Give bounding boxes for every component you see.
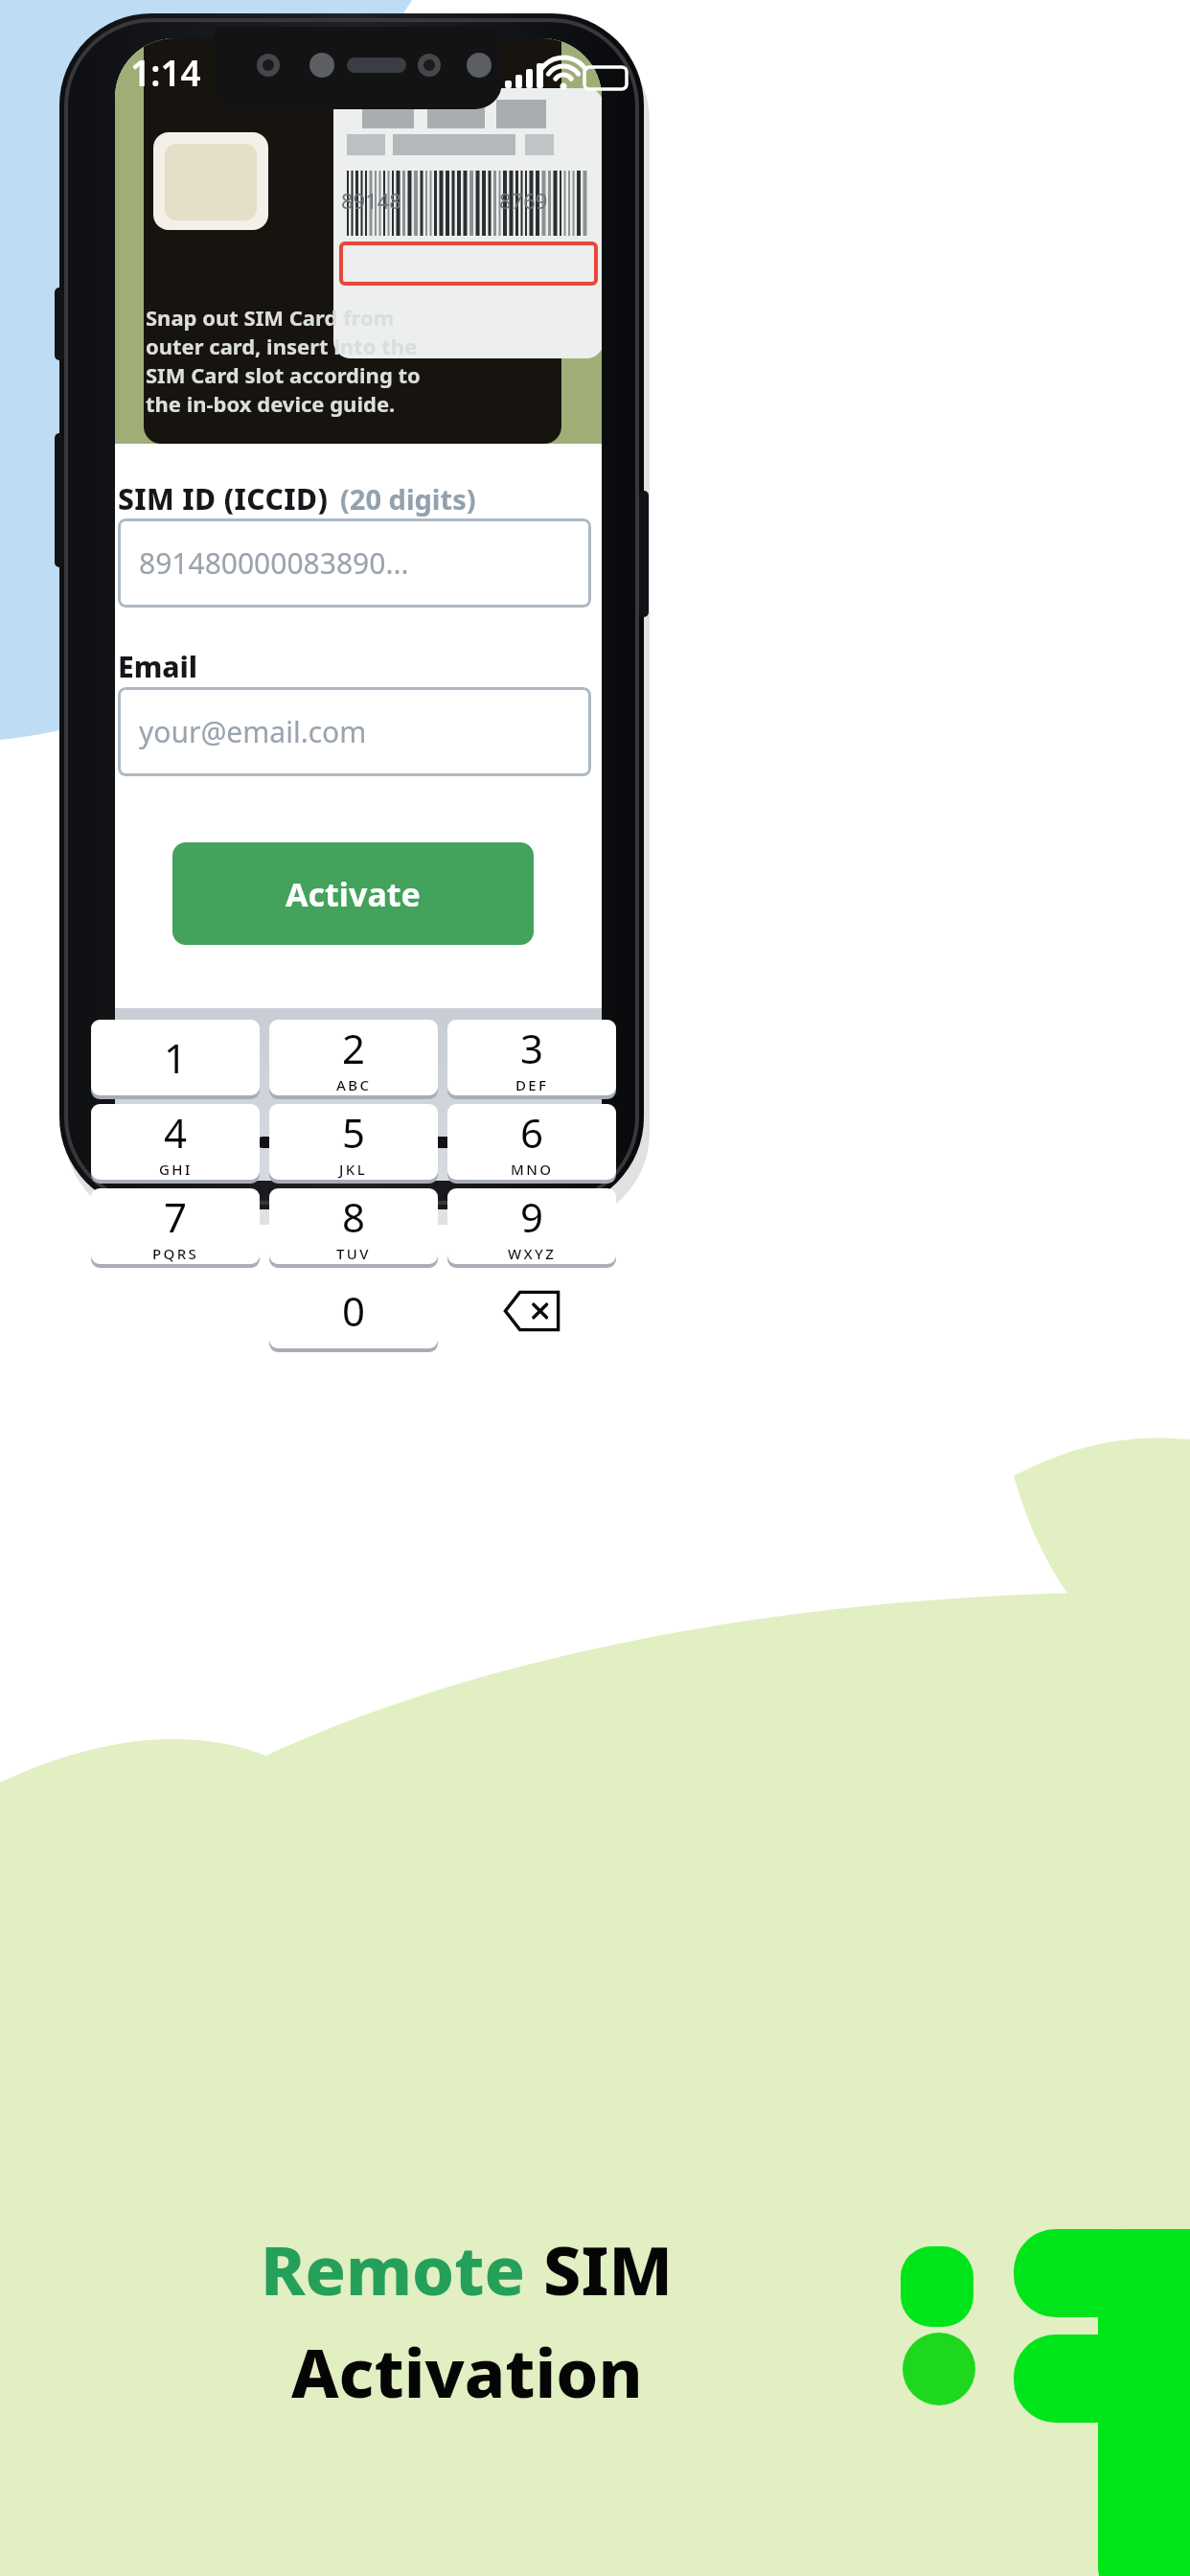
staticText: PQRS (152, 1244, 199, 1263)
staticText: 4 (164, 1105, 188, 1160)
staticText: your@email.com (139, 712, 367, 751)
staticText: Snap out SIM Card from (146, 303, 395, 332)
button[interactable]: 8 (269, 1188, 438, 1264)
staticText: ABC (336, 1075, 372, 1094)
staticText: the in-box device guide. (146, 389, 396, 418)
button[interactable]: 1 (91, 1020, 260, 1095)
staticText: GHI (159, 1160, 193, 1179)
staticText: 7 (164, 1189, 188, 1244)
button[interactable]: 3 (447, 1020, 616, 1095)
staticText: SIM ID (ICCID) (118, 479, 329, 518)
staticText: Activation (291, 2326, 643, 2417)
staticText: WXYZ (508, 1244, 557, 1263)
staticText: DEF (515, 1075, 549, 1094)
staticText: 891480000083890... (139, 543, 409, 583)
staticText: 1 (164, 1030, 188, 1085)
staticText: 8769 (499, 186, 548, 215)
staticText: SIM Card slot according to (146, 360, 421, 389)
button[interactable]: Activate (172, 842, 534, 945)
staticText: Email (118, 647, 198, 686)
staticText: 1:14 (130, 48, 201, 96)
button[interactable]: Backspace (447, 1273, 616, 1348)
button[interactable]: 891480000083890... (118, 518, 591, 608)
staticText: (20 digits) (340, 480, 476, 517)
button[interactable]: 0 (269, 1273, 438, 1348)
staticText: TUV (336, 1244, 371, 1263)
staticText: 0 (342, 1283, 366, 1338)
staticText: 6 (520, 1105, 544, 1160)
button[interactable]: 2 (269, 1020, 438, 1095)
button[interactable]: 4 (91, 1104, 260, 1180)
staticText: 2 (342, 1021, 366, 1075)
staticText: JKL (339, 1160, 368, 1179)
button[interactable]: 6 (447, 1104, 616, 1180)
button[interactable]: 7 (91, 1188, 260, 1264)
staticText: 9 (520, 1189, 544, 1244)
staticText: MNO (511, 1160, 554, 1179)
staticText: Activate (286, 872, 421, 916)
button[interactable]: your@email.com (118, 687, 591, 776)
staticText: 8 (342, 1189, 366, 1244)
button[interactable]: 5 (269, 1104, 438, 1180)
staticText: SIM (543, 2223, 674, 2314)
staticText: outer card, insert into the (146, 332, 418, 360)
button[interactable]: 9 (447, 1188, 616, 1264)
staticText: 89148 (341, 186, 401, 215)
staticText: 5 (342, 1105, 366, 1160)
staticText: 3 (520, 1021, 544, 1075)
staticText: Remote (261, 2223, 543, 2314)
